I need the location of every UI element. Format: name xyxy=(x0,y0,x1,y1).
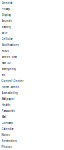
button[interactable]: Display xyxy=(0,12,64,18)
staticText: Photos xyxy=(2,145,12,149)
staticText: Accessibility xyxy=(2,91,18,95)
button[interactable]: Passwords xyxy=(0,108,64,114)
button[interactable]: Home Screen xyxy=(0,84,64,90)
button[interactable]: Notifications xyxy=(0,42,64,48)
staticText: Wi-Fi xyxy=(2,31,8,35)
button[interactable]: Privacy xyxy=(0,6,64,12)
staticText: Emergency xyxy=(2,67,16,71)
staticText: Display xyxy=(2,13,11,17)
staticText: Sounds xyxy=(2,19,12,23)
button[interactable]: Health xyxy=(0,102,64,108)
button[interactable]: Battery xyxy=(0,24,64,30)
staticText: Home Screen xyxy=(2,85,20,89)
button[interactable]: Mail xyxy=(0,114,64,120)
button[interactable]: Photos xyxy=(0,144,64,150)
button[interactable]: Wi-Fi xyxy=(0,30,64,36)
staticText: Notes xyxy=(2,133,10,137)
button[interactable]: Calendar xyxy=(0,126,64,132)
staticText: Calendar xyxy=(2,127,14,131)
staticText: Face ID xyxy=(2,61,11,65)
button[interactable]: Emergency xyxy=(0,66,64,72)
staticText: Control Center xyxy=(2,79,24,83)
staticText: Battery xyxy=(2,25,11,29)
button[interactable]: Face ID xyxy=(0,60,64,66)
staticText: Contacts xyxy=(2,121,13,125)
staticText: Wallpaper xyxy=(2,97,15,101)
button[interactable]: Screen Time xyxy=(0,54,64,60)
button[interactable]: Wallpaper xyxy=(0,96,64,102)
staticText: Focus xyxy=(2,49,9,53)
button[interactable]: Cellular xyxy=(0,36,64,42)
staticText: Reminders xyxy=(2,139,17,143)
staticText: Siri xyxy=(2,73,6,77)
button[interactable]: Accessibility xyxy=(0,90,64,96)
button[interactable]: Focus xyxy=(0,48,64,54)
button[interactable]: Control Center xyxy=(0,78,64,84)
button[interactable]: General xyxy=(0,0,64,6)
staticText: Cellular xyxy=(2,37,13,41)
button[interactable]: Reminders xyxy=(0,138,64,144)
staticText: Screen Time xyxy=(2,55,18,59)
staticText: Passwords xyxy=(2,109,15,113)
button[interactable]: Contacts xyxy=(0,120,64,126)
button[interactable]: Siri xyxy=(0,72,64,78)
staticText: Health xyxy=(2,103,11,107)
staticText: Mail xyxy=(2,115,7,119)
staticText: General xyxy=(2,1,13,5)
staticText: Privacy xyxy=(2,7,10,11)
button[interactable]: Notes xyxy=(0,132,64,138)
staticText: Notifications xyxy=(2,43,19,47)
button[interactable]: Sounds xyxy=(0,18,64,24)
